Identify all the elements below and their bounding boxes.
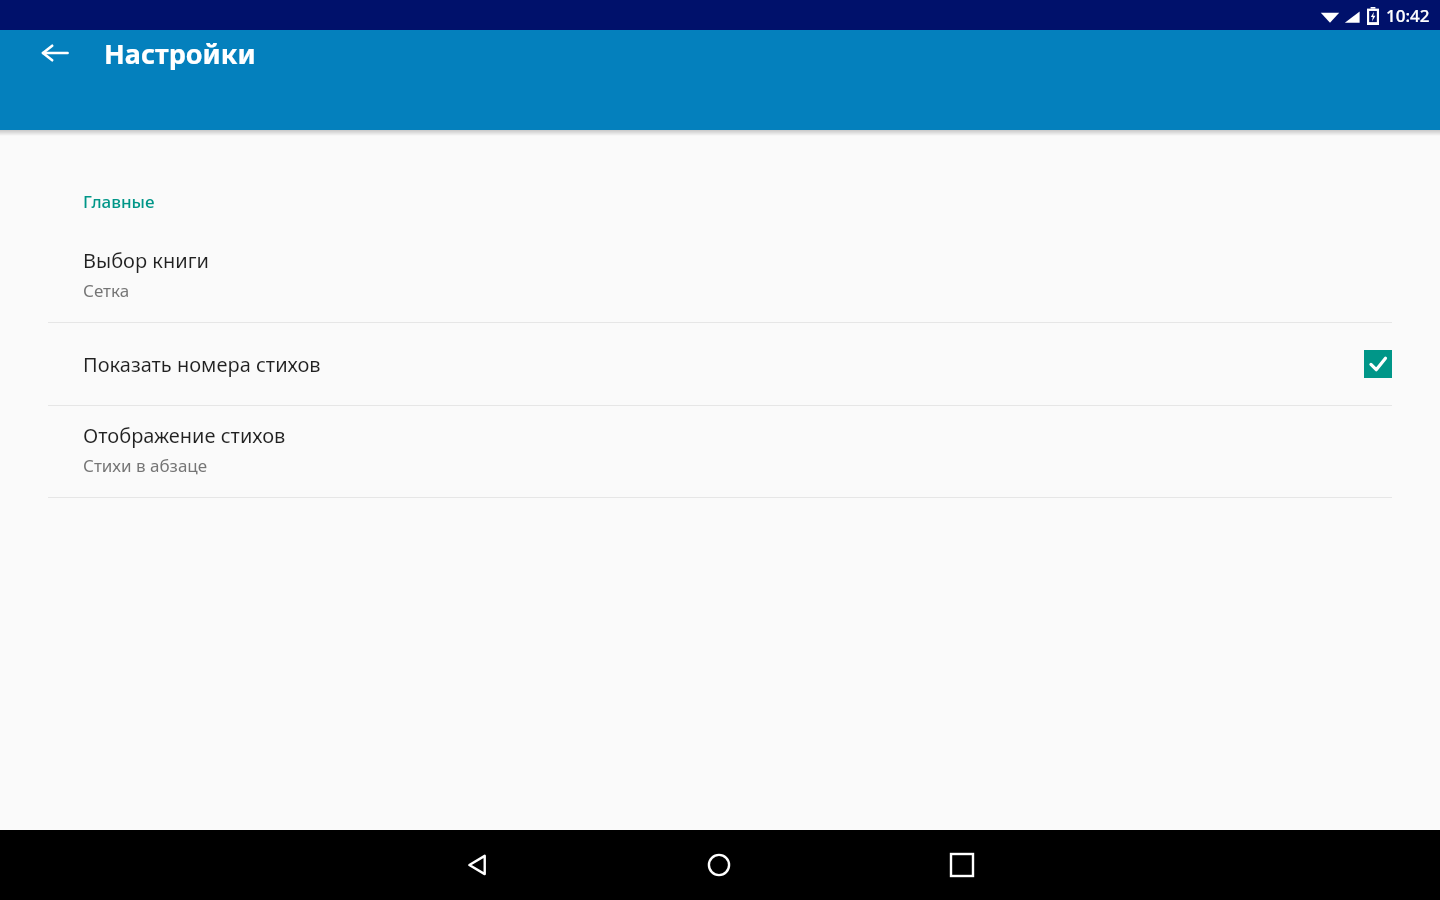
staticText: Главные — [83, 190, 155, 213]
button[interactable]: Показать номера стихов — [0, 323, 1440, 405]
staticText: 10:42 — [1386, 4, 1430, 27]
staticText: Выбор книги — [83, 247, 209, 274]
button[interactable]: Back — [446, 833, 510, 897]
staticText: Показать номера стихов — [83, 351, 1364, 378]
button[interactable]: Выбор книги — [0, 231, 1440, 322]
button[interactable]: Back — [32, 30, 78, 76]
button[interactable]: Home — [687, 833, 751, 897]
staticText: Отображение стихов — [83, 422, 286, 449]
staticText: Настройки — [104, 35, 256, 72]
staticText: Сетка — [83, 279, 130, 302]
button[interactable]: Recent apps — [930, 833, 994, 897]
staticText: Стихи в абзаце — [83, 454, 208, 477]
button[interactable]: Отображение стихов — [0, 406, 1440, 497]
